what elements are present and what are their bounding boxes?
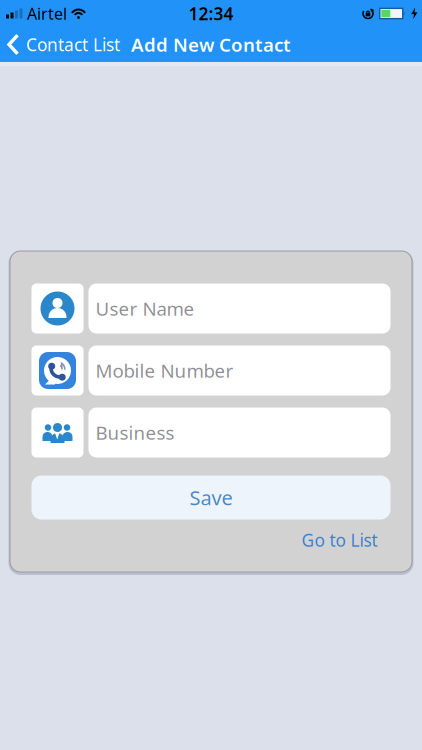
staticText: User Name <box>95 296 194 321</box>
staticText: Contact List <box>26 33 120 56</box>
staticText: Add New Contact <box>131 32 291 57</box>
button[interactable]: Back to Contact List <box>0 33 120 56</box>
staticText: 12:34 <box>188 2 233 25</box>
button[interactable]: Mobile Number <box>88 345 390 395</box>
staticText: Business <box>95 420 174 445</box>
staticText: Mobile Number <box>95 358 233 383</box>
button[interactable]: Save <box>31 475 390 519</box>
staticText: Save <box>189 484 232 511</box>
staticText: Airtel <box>27 3 67 24</box>
button[interactable]: Business <box>88 407 390 457</box>
staticText: Go to List <box>301 528 377 551</box>
button[interactable]: User Name <box>88 283 390 333</box>
button[interactable]: Go to List <box>301 528 377 551</box>
